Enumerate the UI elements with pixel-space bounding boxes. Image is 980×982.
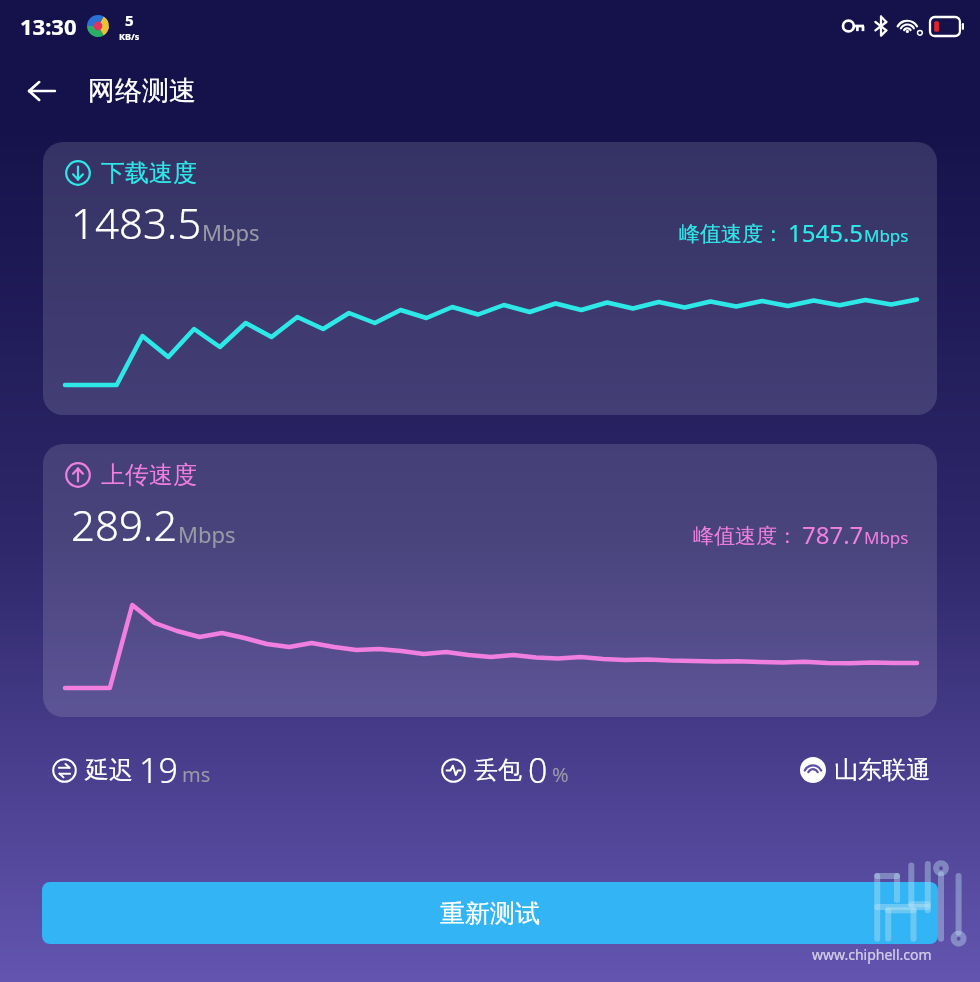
staticText: 19 [139, 747, 178, 793]
staticText: 网络测速 [88, 74, 196, 108]
staticText: 787.7 [802, 518, 864, 551]
staticText: www.chiphell.com [812, 945, 932, 964]
button[interactable]: 山东联通 [800, 755, 930, 785]
staticText: Mbps [864, 224, 909, 247]
staticText: 5 [125, 10, 134, 30]
staticText: Mbps [202, 217, 260, 247]
staticText: 13:30 [20, 11, 77, 41]
staticText: Mbps [864, 526, 909, 549]
button[interactable]: Back [14, 63, 70, 119]
staticText: KB/s [119, 30, 140, 42]
staticText: % [552, 761, 569, 788]
staticText: 上传速度 [101, 460, 197, 490]
staticText: 丢包 [474, 755, 522, 785]
staticText: 0 [528, 747, 548, 793]
button[interactable]: 延迟 [52, 747, 211, 793]
staticText: 延迟 [85, 755, 133, 785]
button[interactable]: 丢包 [441, 747, 569, 793]
button[interactable]: 重新测试 [42, 882, 938, 944]
staticText: 下载速度 [101, 158, 197, 188]
staticText: 峰值速度： [679, 221, 784, 247]
staticText: ms [182, 761, 211, 788]
staticText: 289.2 [71, 496, 178, 553]
staticText: 重新测试 [440, 898, 540, 929]
button[interactable]: 下载速度 [43, 142, 937, 415]
staticText: 1545.5 [788, 216, 864, 249]
staticText: 峰值速度： [693, 523, 798, 549]
staticText: Mbps [178, 519, 236, 549]
button[interactable]: 上传速度 [43, 444, 937, 717]
staticText: 1483.5 [71, 194, 202, 251]
staticText: 山东联通 [834, 755, 930, 785]
